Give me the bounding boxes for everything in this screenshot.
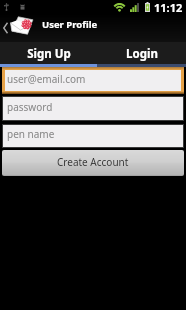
button[interactable]: Back to User Profile bbox=[0, 14, 42, 42]
staticText: pen name bbox=[7, 127, 55, 141]
staticText: Create Account bbox=[57, 155, 129, 169]
button[interactable]: pen name bbox=[3, 125, 183, 147]
staticText: User Profile bbox=[42, 18, 98, 31]
button[interactable]: Create Account bbox=[2, 150, 184, 176]
button[interactable]: user@email.com bbox=[5, 70, 181, 91]
staticText: 11:12 bbox=[154, 0, 183, 14]
staticText: Sign Up bbox=[27, 46, 71, 62]
staticText: Login bbox=[126, 46, 158, 62]
staticText: password bbox=[7, 100, 53, 114]
staticText: user@email.com bbox=[7, 72, 86, 86]
button[interactable]: Sign Up bbox=[0, 42, 97, 64]
button[interactable]: Login bbox=[97, 42, 186, 64]
button[interactable]: password bbox=[3, 97, 183, 120]
